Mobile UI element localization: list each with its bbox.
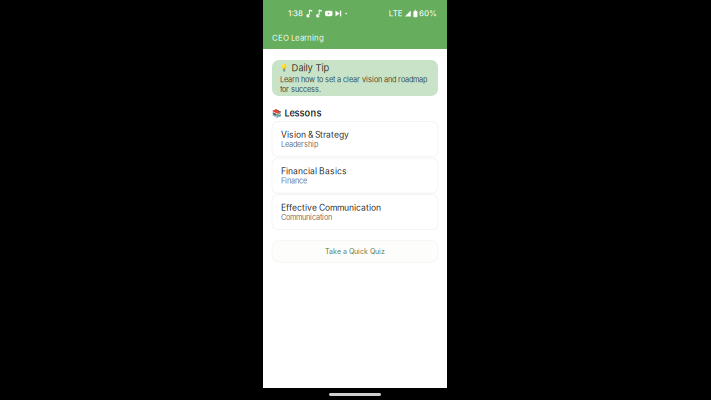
staticText: Finance <box>281 176 307 185</box>
button[interactable]: Vision & Strategy <box>272 122 438 157</box>
staticText: 1:38 <box>288 9 303 18</box>
staticText: Communication <box>281 213 332 222</box>
staticText: Take a Quick Quiz <box>325 247 385 256</box>
staticText: CEO Learning <box>272 33 324 43</box>
button[interactable]: Effective Communication <box>272 195 438 230</box>
button[interactable]: Take a Quick Quiz <box>272 241 438 262</box>
staticText: Daily Tip <box>291 62 329 73</box>
staticText: Lessons <box>284 107 321 119</box>
staticText: Effective Communication <box>281 202 381 213</box>
staticText: 📚 <box>272 108 282 118</box>
staticText: Learn how to set a clear vision and road… <box>280 75 427 94</box>
button[interactable]: Financial Basics <box>272 158 438 193</box>
staticText: 60% <box>419 9 437 18</box>
staticText: Leadership <box>281 140 318 149</box>
staticText: 💡 <box>280 64 288 72</box>
staticText: LTE <box>389 9 403 18</box>
staticText: Vision & Strategy <box>281 129 349 140</box>
staticText: Financial Basics <box>281 166 347 176</box>
